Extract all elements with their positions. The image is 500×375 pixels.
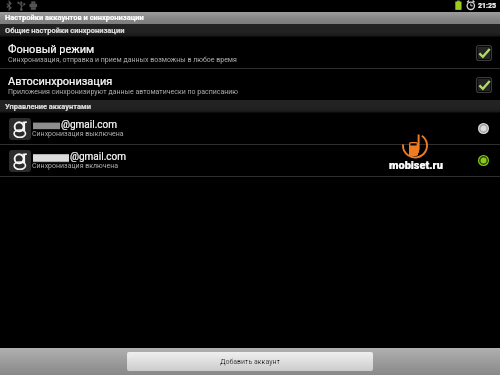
button[interactable]: Автосинхронизация [0,69,500,100]
staticText: Приложения синхронизируют данные автомат… [8,88,239,96]
staticText: Фоновый режим [8,43,95,56]
other: Google [9,150,31,172]
staticText: Синхронизация включена [32,162,119,170]
staticText: mobiset.ru [389,159,443,172]
staticText: Управление аккаунтами [5,102,91,111]
button[interactable]: Google [0,113,500,144]
staticText: @gmail.com [70,151,127,163]
button[interactable]: Синхронизация включена [478,155,489,166]
staticText: @gmail.com [61,119,118,131]
button[interactable]: Включено [476,77,492,93]
staticText: 21:25 [478,2,497,10]
other: Google [9,118,31,140]
button[interactable]: Фоновый режим [0,37,500,68]
staticText: Настройки аккаунтов и синхронизации [5,13,144,22]
button[interactable]: Добавить аккаунт [127,352,373,371]
staticText: Синхронизация выключена [32,130,124,138]
staticText: Синхронизация, отправка и прием данных в… [8,56,237,64]
button[interactable]: Синхронизация выключена [478,123,489,134]
button[interactable]: Google [0,145,500,176]
staticText: Добавить аккаунт [220,358,280,366]
staticText: Общие настройки синхронизации [5,26,125,35]
staticText: Автосинхронизация [8,75,113,88]
button[interactable]: Включено [476,45,492,61]
